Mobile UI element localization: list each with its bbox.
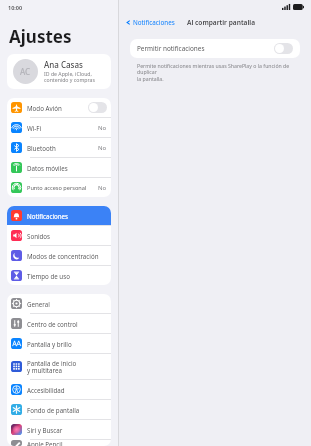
button[interactable]: Activar: [88, 102, 107, 113]
button[interactable]: Notificaciones: [7, 206, 111, 225]
button[interactable]: Accesibilidad: [7, 380, 111, 399]
staticText: No: [98, 124, 107, 132]
staticText: Fondo de pantalla: [27, 406, 107, 414]
staticText: Pantalla de inicio y multitarea: [27, 359, 107, 375]
staticText: Datos móviles: [27, 164, 107, 172]
button[interactable]: Wi-Fi: [7, 118, 111, 137]
staticText: Notificaciones: [27, 212, 107, 220]
button[interactable]: Modo Avión: [7, 98, 111, 117]
staticText: AC: [20, 66, 31, 77]
staticText: ID de Apple, iCloud, contenido y compras: [44, 70, 95, 84]
staticText: Sonidos: [27, 232, 107, 240]
staticText: Apple Pencil: [27, 440, 107, 446]
button[interactable]: Apple Pencil: [7, 440, 111, 446]
staticText: Tiempo de uso: [27, 272, 107, 280]
button[interactable]: Pantalla y brillo: [7, 334, 111, 353]
button[interactable]: Tiempo de uso: [7, 266, 111, 285]
staticText: Modo Avión: [27, 104, 88, 112]
button[interactable]: Punto acceso personal: [7, 178, 111, 197]
staticText: Permitir notificaciones: [137, 44, 274, 53]
staticText: No: [98, 144, 107, 152]
button[interactable]: Siri y Buscar: [7, 420, 111, 439]
button[interactable]: Sonidos: [7, 226, 111, 245]
button[interactable]: Modos de concentración: [7, 246, 111, 265]
staticText: Notificaciones: [133, 18, 175, 27]
button[interactable]: Bluetooth: [7, 138, 111, 157]
staticText: 10:00: [8, 4, 23, 11]
button[interactable]: Fondo de pantalla: [7, 400, 111, 419]
staticText: Ajustes: [9, 25, 72, 48]
staticText: Punto acceso personal: [27, 184, 98, 192]
button[interactable]: General: [7, 294, 111, 313]
button[interactable]: Pantalla de inicio y multitarea: [7, 354, 111, 379]
button[interactable]: AC: [7, 54, 111, 89]
button[interactable]: Datos móviles: [7, 158, 111, 177]
button[interactable]: Permitir notificaciones: [130, 39, 300, 58]
staticText: Ana Casas: [44, 59, 83, 70]
staticText: Accesibilidad: [27, 386, 107, 394]
staticText: Modos de concentración: [27, 252, 107, 260]
staticText: No: [98, 184, 107, 192]
staticText: Pantalla y brillo: [27, 340, 107, 348]
staticText: Wi-Fi: [27, 124, 98, 132]
staticText: Siri y Buscar: [27, 426, 107, 434]
button[interactable]: Notificaciones: [124, 17, 177, 28]
staticText: General: [27, 300, 107, 308]
staticText: Centro de control: [27, 320, 107, 328]
staticText: Permite notificaciones mientras usas Sha…: [137, 62, 293, 83]
button[interactable]: Centro de control: [7, 314, 111, 333]
button[interactable]: Activar: [274, 43, 293, 54]
staticText: Al compartir pantalla: [187, 18, 256, 27]
staticText: Bluetooth: [27, 144, 98, 152]
